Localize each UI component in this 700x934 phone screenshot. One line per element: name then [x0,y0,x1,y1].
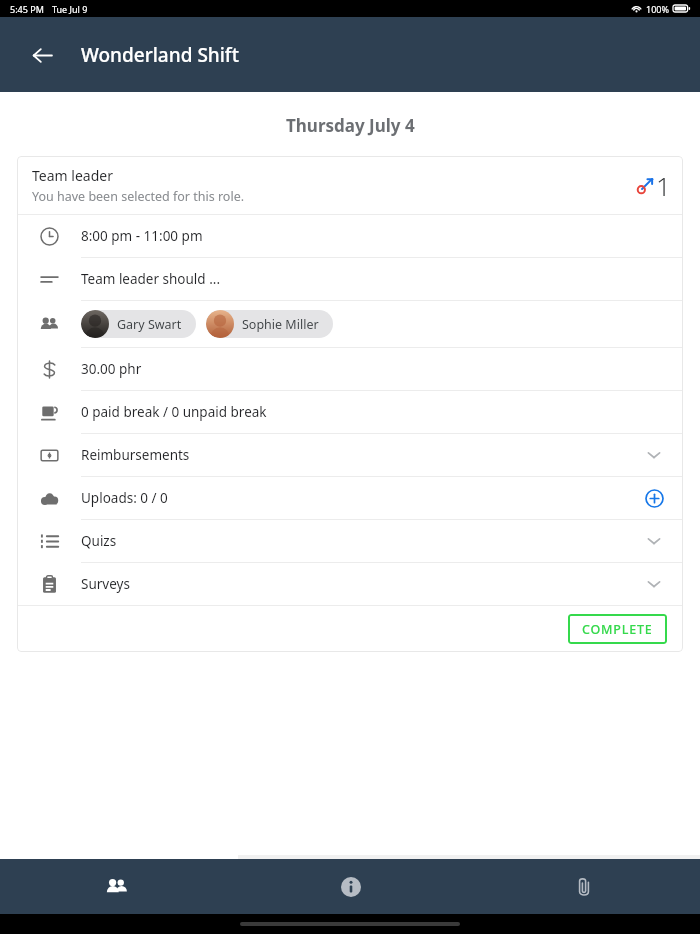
staticText: Quizs [81,532,117,550]
button[interactable]: Expand [639,526,669,556]
button[interactable]: Reimbursements [17,434,683,476]
button[interactable]: Quizs [17,520,683,562]
staticText: Wonderland Shift [81,42,239,68]
staticText: Uploads: 0 / 0 [81,489,168,507]
staticText: 8:00 pm - 11:00 pm [81,227,203,245]
staticText: Reimbursements [81,446,190,464]
staticText: Surveys [81,575,130,593]
staticText: Sophie Miller [242,316,319,333]
button[interactable]: Uploads: 0 / 0 [17,477,683,519]
button[interactable]: Attachments [467,859,700,914]
staticText: 30.00 phr [81,360,142,378]
button[interactable]: COMPLETE [568,614,667,644]
button[interactable]: Expand [639,569,669,599]
staticText: 1 [656,168,671,203]
staticText: 5:45 PM [10,3,44,15]
button[interactable]: Gary Swart [17,301,683,347]
staticText: Tue Jul 9 [52,3,88,15]
button[interactable]: Add upload [639,483,669,513]
button[interactable]: Gary Swart [81,310,196,338]
button[interactable]: Surveys [17,563,683,605]
button[interactable]: Expand [639,440,669,470]
staticText: Team leader should ... [81,270,221,288]
button[interactable]: 8:00 pm - 11:00 pm [17,215,683,257]
button[interactable]: Sophie Miller [206,310,333,338]
staticText: Team leader [32,166,113,185]
staticText: 0 paid break / 0 unpaid break [81,403,267,421]
button[interactable]: Info [234,859,467,914]
staticText: You have been selected for this role. [32,188,245,205]
staticText: Thursday July 4 [286,114,415,137]
staticText: Gary Swart [117,316,182,333]
button[interactable]: 0 paid break / 0 unpaid break [17,391,683,433]
button[interactable]: Team leader should ... [17,258,683,300]
staticText: 100% [646,3,669,15]
staticText: COMPLETE [582,621,653,638]
button[interactable]: People [0,859,234,914]
button[interactable]: 30.00 phr [17,348,683,390]
button[interactable]: Back [22,35,62,75]
